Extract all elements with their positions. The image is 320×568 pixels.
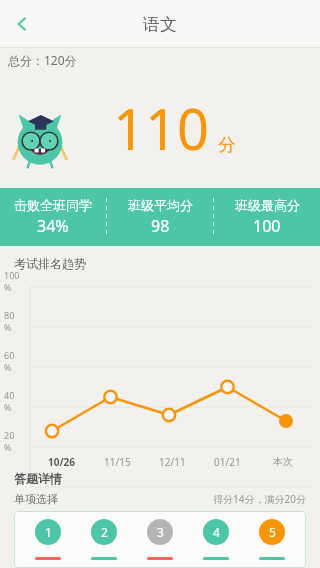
staticText: 10/26 xyxy=(48,455,76,469)
staticText: 分 xyxy=(218,134,236,157)
button[interactable]: 7 xyxy=(91,557,117,560)
staticText: 2 xyxy=(101,524,108,540)
button[interactable]: 9 xyxy=(203,557,229,560)
staticText: 总分：120分 xyxy=(8,52,77,68)
staticText: 60 xyxy=(4,349,15,361)
staticText: 考试排名趋势 xyxy=(14,256,86,271)
staticText: 98 xyxy=(151,215,170,237)
staticText: 击败全班同学 xyxy=(14,197,92,213)
button[interactable]: 3 xyxy=(147,519,173,545)
button[interactable]: 2 xyxy=(91,519,117,545)
staticText: 5 xyxy=(269,524,276,540)
staticText: 语文 xyxy=(143,14,177,35)
staticText: % xyxy=(4,361,12,373)
staticText: 110 xyxy=(113,90,210,166)
staticText: % xyxy=(4,321,12,333)
staticText: 本次 xyxy=(273,455,293,468)
staticText: 3 xyxy=(157,524,164,540)
button[interactable]: 班级最高分 xyxy=(214,197,320,237)
staticText: 01/21 xyxy=(214,455,241,469)
staticText: % xyxy=(4,281,12,293)
staticText: 100 xyxy=(4,269,20,281)
staticText: 40 xyxy=(4,389,15,401)
button[interactable]: 8 xyxy=(147,557,173,560)
staticText: 80 xyxy=(4,309,15,321)
button[interactable]: 5 xyxy=(259,519,285,545)
button[interactable]: 10 xyxy=(259,557,285,560)
staticText: 得分14分，满分20分 xyxy=(213,492,306,506)
staticText: 100 xyxy=(253,215,281,237)
staticText: 4 xyxy=(213,524,220,540)
button[interactable]: 4 xyxy=(203,519,229,545)
staticText: 34% xyxy=(37,215,69,237)
button[interactable]: 击败全班同学 xyxy=(0,197,106,237)
staticText: 1 xyxy=(45,524,52,540)
button[interactable]: 1 xyxy=(35,519,61,545)
staticText: 20 xyxy=(4,429,15,441)
button[interactable]: 班级平均分 xyxy=(107,197,213,237)
staticText: 答题详情 xyxy=(14,471,62,486)
button[interactable]: Back xyxy=(0,2,44,46)
staticText: 单项选择 xyxy=(14,492,58,506)
staticText: % xyxy=(4,441,12,453)
staticText: % xyxy=(4,401,12,413)
staticText: 12/11 xyxy=(159,455,186,469)
staticText: 班级最高分 xyxy=(235,197,300,213)
button[interactable]: 6 xyxy=(35,557,61,560)
staticText: 11/15 xyxy=(104,455,131,469)
staticText: 班级平均分 xyxy=(128,197,193,213)
